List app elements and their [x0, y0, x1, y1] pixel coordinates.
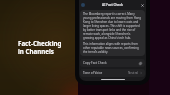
staticText: AI Fact Check	[85, 3, 140, 7]
staticText: Tone of Voice	[83, 71, 128, 75]
staticText: Copy Fact Check	[83, 61, 139, 65]
button[interactable]: Copy Fact Check	[80, 59, 145, 67]
staticText: The Bloomberg report is correct. Many yo…	[83, 12, 142, 40]
staticText: Neutral	[128, 71, 139, 75]
button[interactable]: Close	[140, 3, 144, 7]
button[interactable]: Tone of Voice	[80, 69, 145, 77]
staticText: Fact-Checking	[18, 39, 62, 47]
button[interactable]: Account	[81, 3, 85, 7]
staticText: in Channels	[18, 47, 54, 55]
staticText: This information aligns with reports fro…	[83, 42, 139, 54]
